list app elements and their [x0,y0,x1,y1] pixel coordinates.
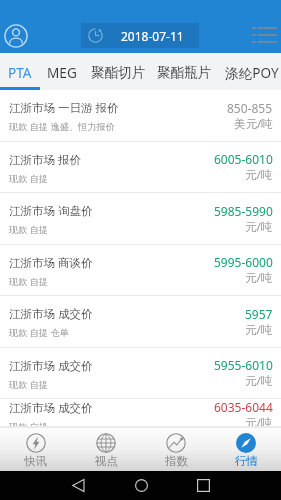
staticText: 行情 [235,454,258,468]
staticText: 元/吨 [245,373,273,389]
button[interactable]: 江浙市场 成交价 [0,348,281,399]
staticText: 元/吨 [245,219,273,235]
button[interactable]: 江浙市场 一日游 报价 [0,90,281,142]
staticText: 6035-6044 [214,399,273,415]
staticText: 850-855 [227,100,273,116]
staticText: 江浙市场 商谈价 [9,255,93,271]
button[interactable]: Home [134,478,148,492]
staticText: 指数 [165,454,188,468]
button[interactable]: 行情 [211,428,281,471]
staticText: 江浙市场 一日游 报价 [9,100,119,116]
button[interactable]: 指数 [141,428,211,471]
staticText: 视点 [95,454,118,468]
staticText: 江浙市场 成交价 [9,306,93,322]
staticText: 现款 自提 [9,420,49,427]
staticText: 6005-6010 [214,151,273,167]
staticText: 元/吨 [245,322,273,338]
staticText: 5985-5990 [214,203,273,219]
staticText: 现款 自提 仓单 [9,326,69,339]
staticText: 快讯 [24,454,47,468]
staticText: 现款 自提 [9,223,49,236]
button[interactable]: 江浙市场 成交价 [0,399,281,427]
staticText: 江浙市场 成交价 [9,400,93,416]
staticText: 5995-6000 [214,254,273,270]
button[interactable]: Profile [2,22,30,50]
button[interactable]: 江浙市场 询盘价 [0,193,281,245]
staticText: 美元/吨 [234,116,273,132]
staticText: PTA [8,63,32,82]
staticText: MEG [47,63,77,82]
button[interactable]: 2018-07-11 [81,23,199,48]
button[interactable]: 涤纶POY [222,53,281,90]
staticText: 涤纶POY [225,63,279,82]
staticText: 5955-6010 [214,357,273,373]
staticText: 江浙市场 报价 [9,152,81,168]
staticText: 聚酯切片 [91,64,146,81]
button[interactable]: 江浙市场 商谈价 [0,245,281,296]
staticText: 聚酯瓶片 [157,64,212,81]
staticText: 江浙市场 成交价 [9,358,93,374]
button[interactable]: PTA [0,53,40,90]
button[interactable]: Back [71,478,85,492]
button[interactable]: MEG [40,53,83,90]
button[interactable]: Recents [196,478,210,492]
staticText: 现款 自提 [9,172,49,185]
staticText: 元/吨 [245,167,273,183]
button[interactable]: Menu [247,23,281,48]
staticText: 元/吨 [245,415,273,426]
button[interactable]: 江浙市场 成交价 [0,296,281,348]
button[interactable]: 快讯 [0,428,71,471]
staticText: 现款 自提 [9,275,49,288]
button[interactable]: 江浙市场 报价 [0,142,281,193]
button[interactable]: 视点 [71,428,141,471]
staticText: 5957 [245,306,273,322]
staticText: 现款 自提 逸盛、恒力报价 [9,120,115,133]
staticText: 元/吨 [245,270,273,286]
button[interactable]: 聚酯切片 [83,53,153,90]
button[interactable]: 聚酯瓶片 [150,53,219,90]
staticText: 现款 自提 [9,378,49,391]
staticText: 2018-07-11 [121,28,184,44]
staticText: 江浙市场 询盘价 [9,203,93,219]
